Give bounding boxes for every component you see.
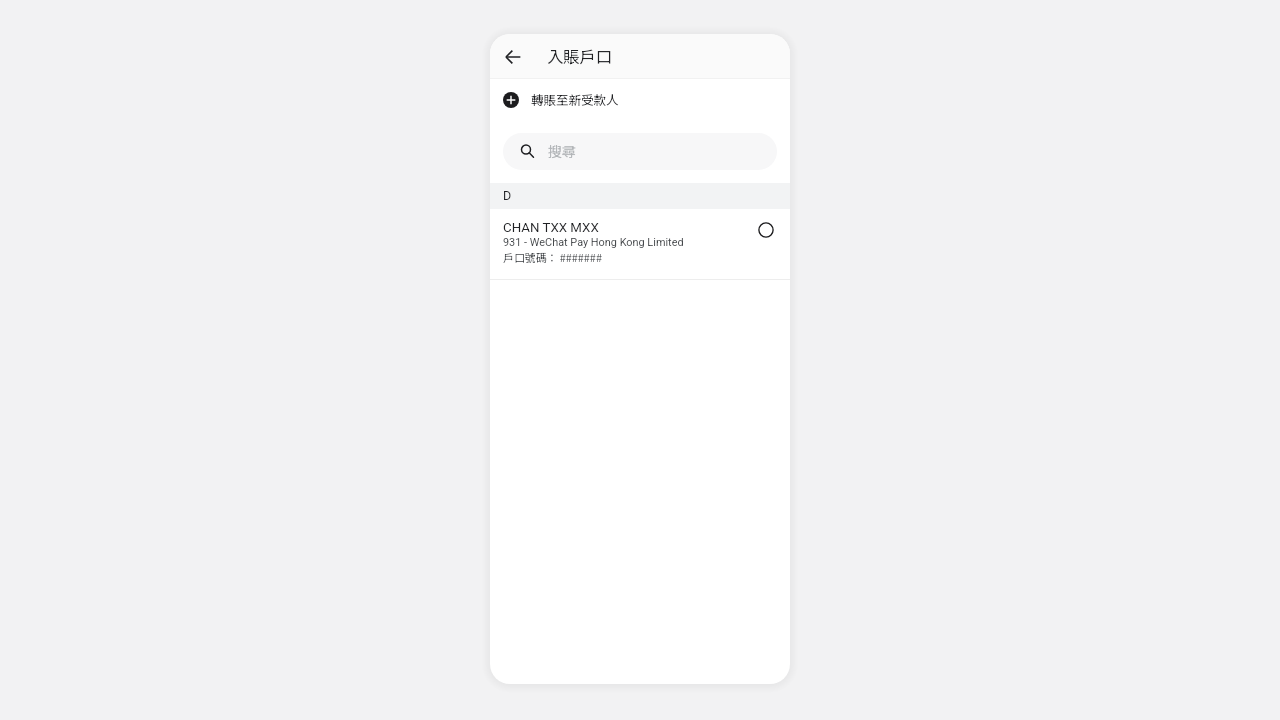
button[interactable]: CHAN TXX MXX bbox=[490, 209, 790, 279]
staticText: 轉賬至新受款人 bbox=[531, 90, 619, 108]
staticText: D bbox=[503, 188, 512, 203]
staticText: 931 - WeChat Pay Hong Kong Limited bbox=[503, 236, 684, 249]
button[interactable]: Back bbox=[497, 41, 529, 73]
staticText: CHAN TXX MXX bbox=[503, 220, 599, 236]
other: Select payee bbox=[758, 222, 774, 238]
button[interactable]: 轉賬至新受款人 bbox=[490, 79, 790, 123]
staticText: 入賬戶口 bbox=[547, 44, 613, 68]
staticText: 搜尋 bbox=[548, 141, 576, 161]
staticText: 戶口號碼： ####### bbox=[503, 249, 602, 265]
button[interactable]: Search bbox=[503, 133, 777, 170]
